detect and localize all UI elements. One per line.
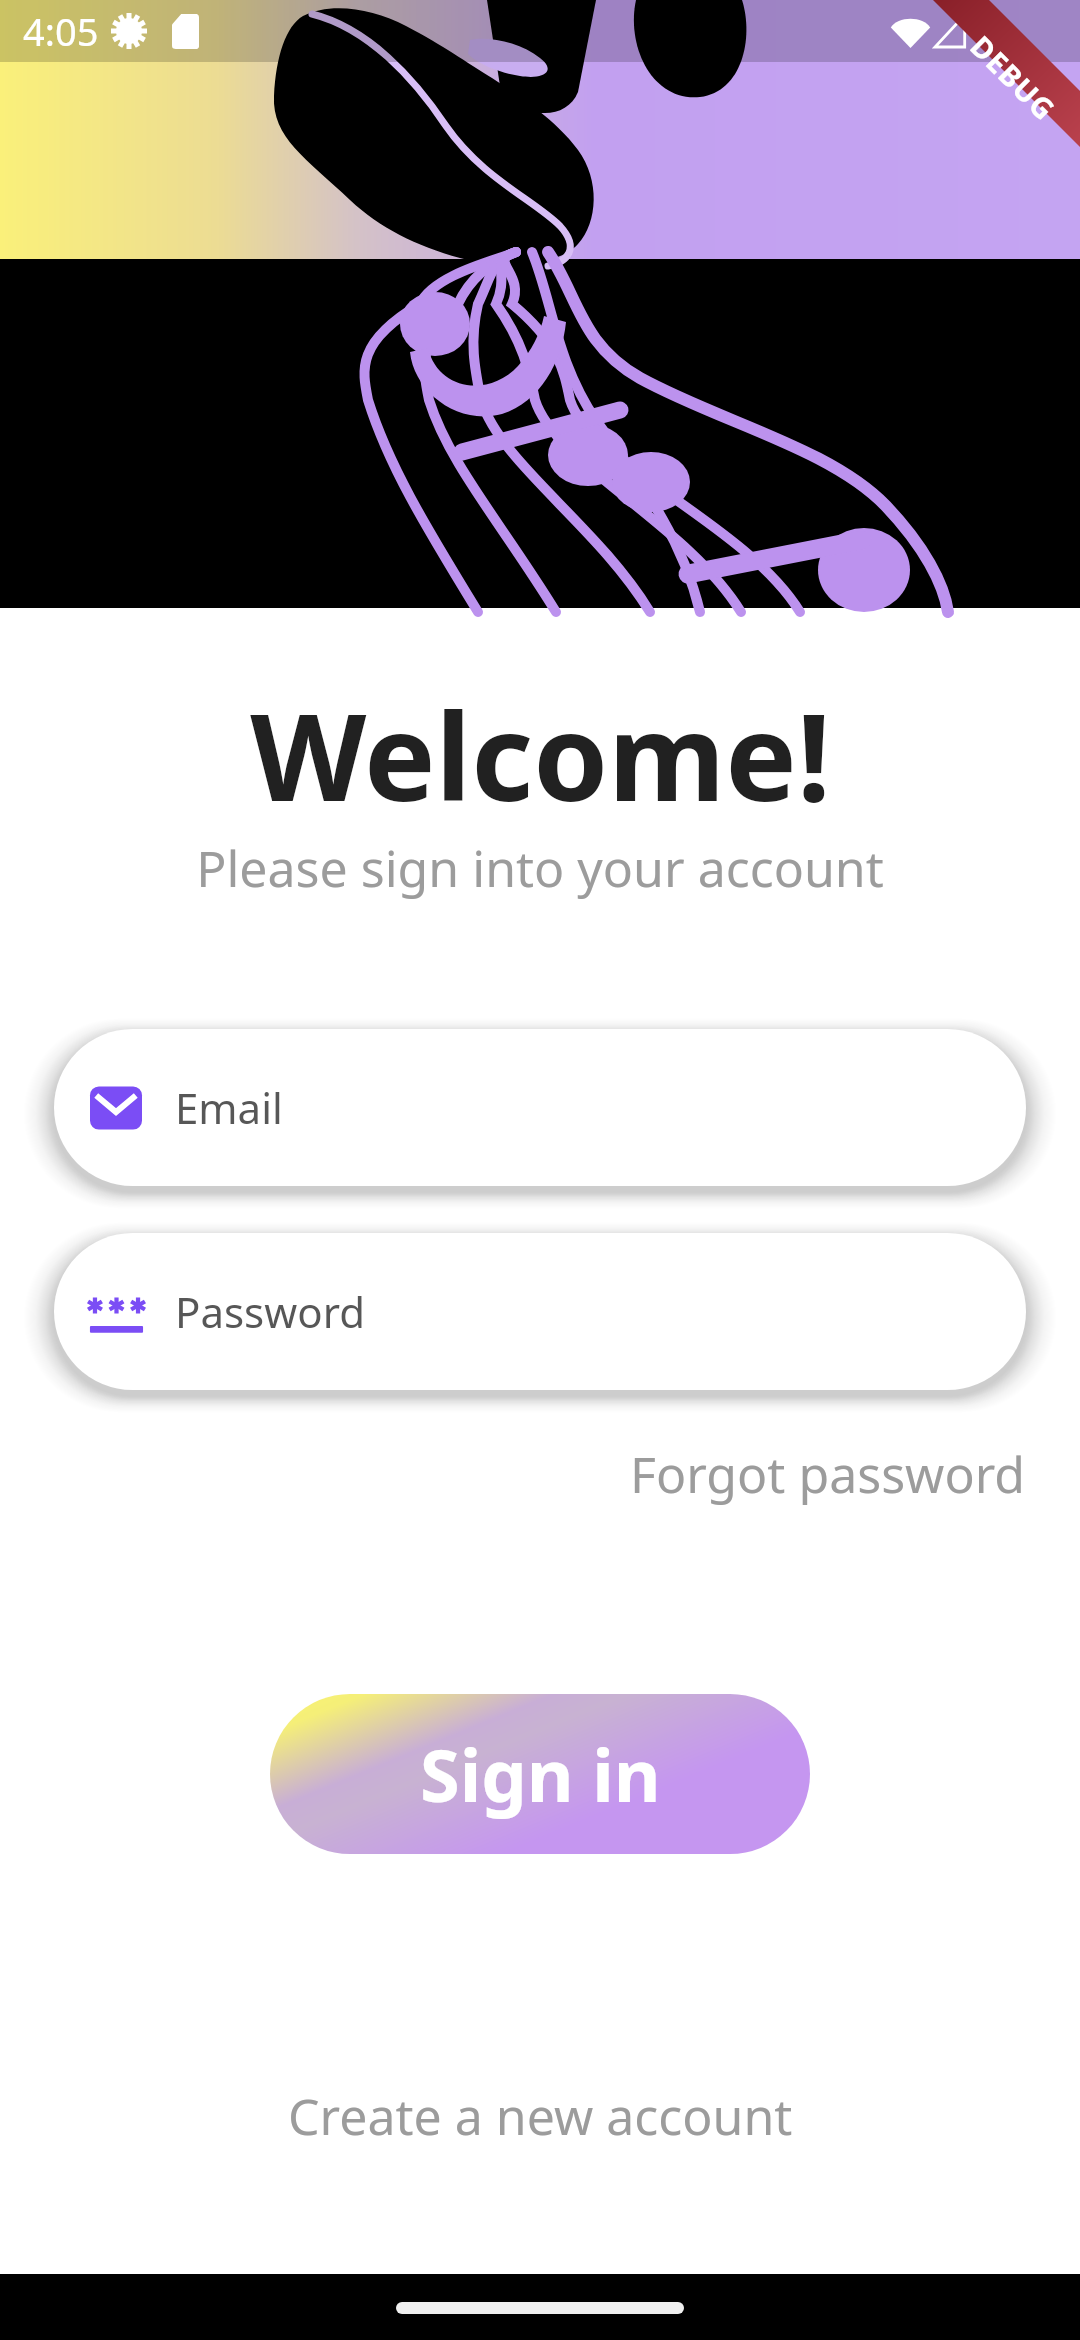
staticText: Password <box>175 1283 365 1340</box>
button[interactable]: Password <box>54 1233 1026 1390</box>
staticText: Forgot password <box>630 1440 1026 1508</box>
staticText: Sign in <box>420 1725 661 1823</box>
staticText: Create a new account <box>288 2082 793 2150</box>
button[interactable]: Create a new account <box>264 2064 817 2168</box>
staticText: 4:05 <box>23 5 99 57</box>
staticText: Email <box>175 1079 283 1136</box>
staticText: Welcome! <box>250 673 831 836</box>
button[interactable]: Email <box>54 1029 1026 1186</box>
button[interactable]: Forgot password <box>622 1422 1034 1526</box>
button[interactable]: Sign in <box>270 1694 810 1854</box>
staticText: DEBUG <box>963 27 1064 128</box>
staticText: Please sign into your account <box>196 834 884 902</box>
